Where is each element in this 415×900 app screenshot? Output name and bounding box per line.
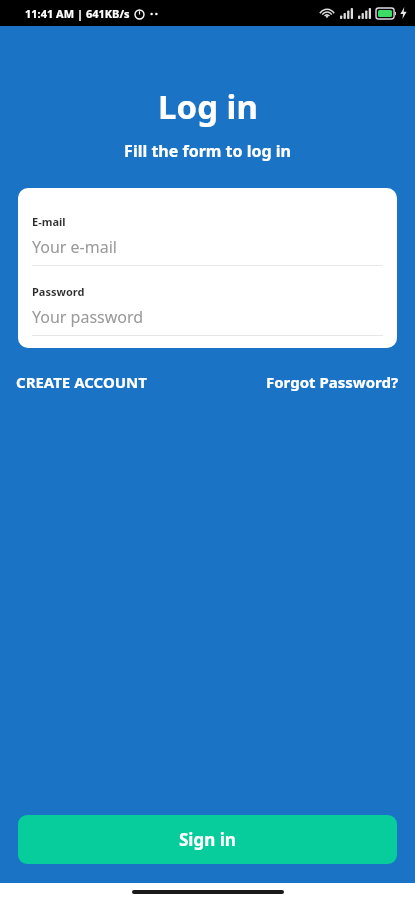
staticText: Your e-mail bbox=[32, 236, 117, 258]
staticText: Sign in bbox=[179, 828, 236, 851]
button[interactable]: CREATE ACCOUNT bbox=[16, 368, 147, 396]
staticText: E-mail bbox=[32, 214, 66, 229]
button[interactable]: Your e-mail bbox=[32, 236, 383, 265]
staticText: Password bbox=[32, 284, 85, 299]
staticText: Log in bbox=[158, 84, 258, 129]
button[interactable]: Your password bbox=[32, 306, 383, 335]
button[interactable]: Forgot Password? bbox=[266, 368, 399, 396]
staticText: Forgot Password? bbox=[266, 372, 399, 392]
button[interactable]: Sign in bbox=[18, 815, 397, 864]
staticText: CREATE ACCOUNT bbox=[16, 372, 147, 392]
staticText: Fill the form to log in bbox=[124, 140, 291, 162]
staticText: Your password bbox=[32, 306, 144, 328]
staticText: 11:41 AM | 641KB/s bbox=[25, 6, 130, 21]
